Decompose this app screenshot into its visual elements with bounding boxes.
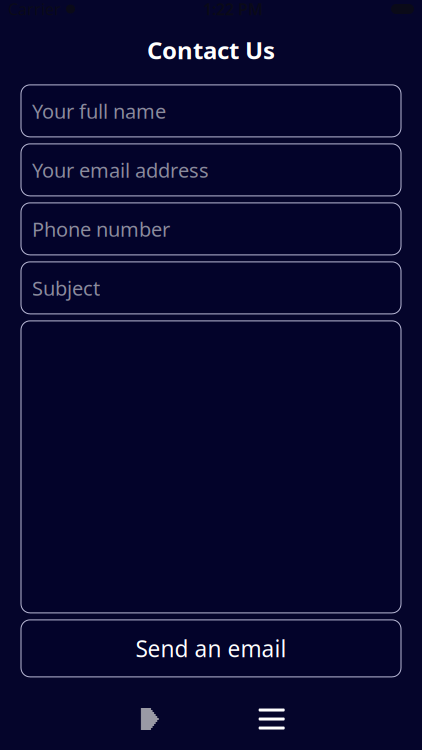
staticText: Carrier [8,0,61,20]
staticText: 1:22 PM [203,0,263,20]
button[interactable]: Menu [245,697,299,741]
staticText: Phone number [32,216,170,242]
staticText: Your email address [32,157,209,183]
staticText: Send an email [135,633,286,663]
staticText: Subject [32,275,100,301]
button[interactable]: Send an email [21,620,401,677]
button[interactable]: Play [123,697,177,741]
staticText: Contact Us [147,34,275,66]
staticText: Your full name [32,98,166,124]
